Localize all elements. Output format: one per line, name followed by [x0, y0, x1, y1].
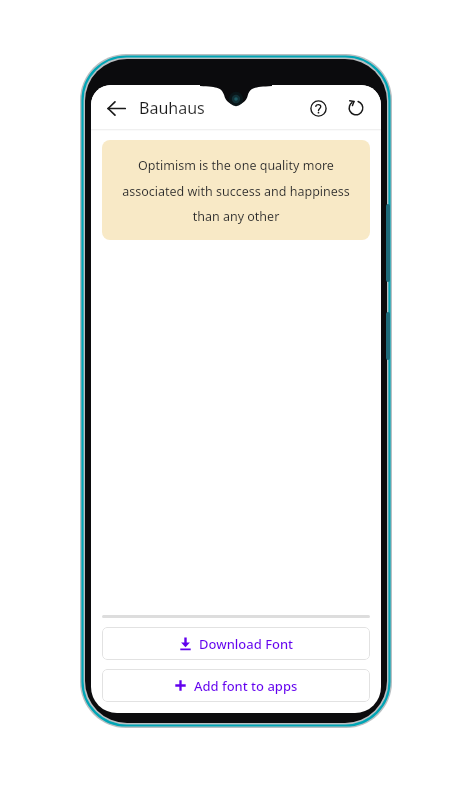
- button[interactable]: Download Font: [102, 627, 370, 660]
- button[interactable]: Optimism is the one quality more associa…: [102, 140, 370, 240]
- staticText: Download Font: [199, 635, 294, 653]
- other: Volume button: [386, 204, 390, 282]
- button[interactable]: Help: [299, 89, 337, 127]
- button[interactable]: Reset: [337, 89, 375, 127]
- button[interactable]: Add font to apps: [102, 669, 370, 702]
- staticText: Add font to apps: [194, 677, 298, 695]
- button[interactable]: Back: [97, 89, 135, 127]
- staticText: Optimism is the one quality more associa…: [114, 157, 358, 224]
- other: Power button: [386, 312, 390, 360]
- staticText: Bauhaus: [139, 97, 205, 119]
